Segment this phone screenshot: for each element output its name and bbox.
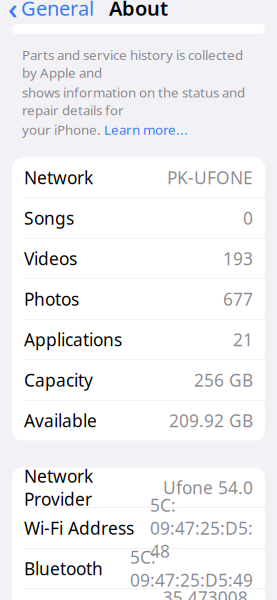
button[interactable]: Learn more...	[104, 121, 188, 138]
staticText: Ufone 54.0	[163, 476, 253, 499]
staticText: 5C:09:47:25:D5:48	[150, 493, 253, 563]
staticText: Videos	[24, 247, 77, 270]
staticText: General	[21, 0, 94, 21]
button[interactable]: Bluetooth	[12, 548, 265, 589]
staticText: 21	[233, 328, 253, 351]
staticText: About	[109, 0, 168, 21]
staticText: 193	[223, 247, 253, 270]
staticText: Available	[24, 409, 97, 432]
button[interactable]: Applications	[12, 319, 265, 360]
staticText: Bluetooth	[24, 557, 103, 580]
button[interactable]: Videos	[12, 238, 265, 279]
button[interactable]: Wi-Fi Address	[12, 508, 265, 548]
staticText: Learn more...	[104, 121, 188, 138]
staticText: Network Provider	[24, 464, 93, 510]
button[interactable]: Network Provider	[12, 467, 265, 508]
staticText: Wi-Fi Address	[24, 516, 134, 539]
button[interactable]: Network	[12, 157, 265, 198]
button[interactable]: Capacity	[12, 360, 265, 400]
staticText: 0	[243, 206, 253, 229]
staticText: 677	[223, 287, 253, 310]
staticText: Songs	[24, 206, 74, 229]
staticText: Parts and service history is collected b…	[22, 46, 243, 81]
button[interactable]: Available	[12, 400, 265, 440]
staticText: 35 473008 899154 5	[163, 586, 248, 600]
staticText: 209.92 GB	[169, 409, 253, 432]
staticText: 5C:09:47:25:D5:49	[130, 545, 253, 591]
button[interactable]: Songs	[12, 198, 265, 238]
staticText: Capacity	[24, 368, 93, 391]
staticText: PK-UFONE	[167, 166, 253, 189]
staticText: ‹	[8, 0, 18, 27]
button[interactable]: Photos	[12, 279, 265, 319]
staticText: Photos	[24, 287, 79, 310]
staticText: 256 GB	[194, 368, 253, 391]
staticText: shows information on the status and repa…	[22, 83, 245, 119]
button[interactable]: ‹	[0, 0, 94, 31]
staticText: Applications	[24, 328, 122, 351]
staticText: your iPhone.	[22, 121, 104, 138]
staticText: Network	[24, 166, 93, 189]
button[interactable]: IMEI	[12, 589, 265, 600]
